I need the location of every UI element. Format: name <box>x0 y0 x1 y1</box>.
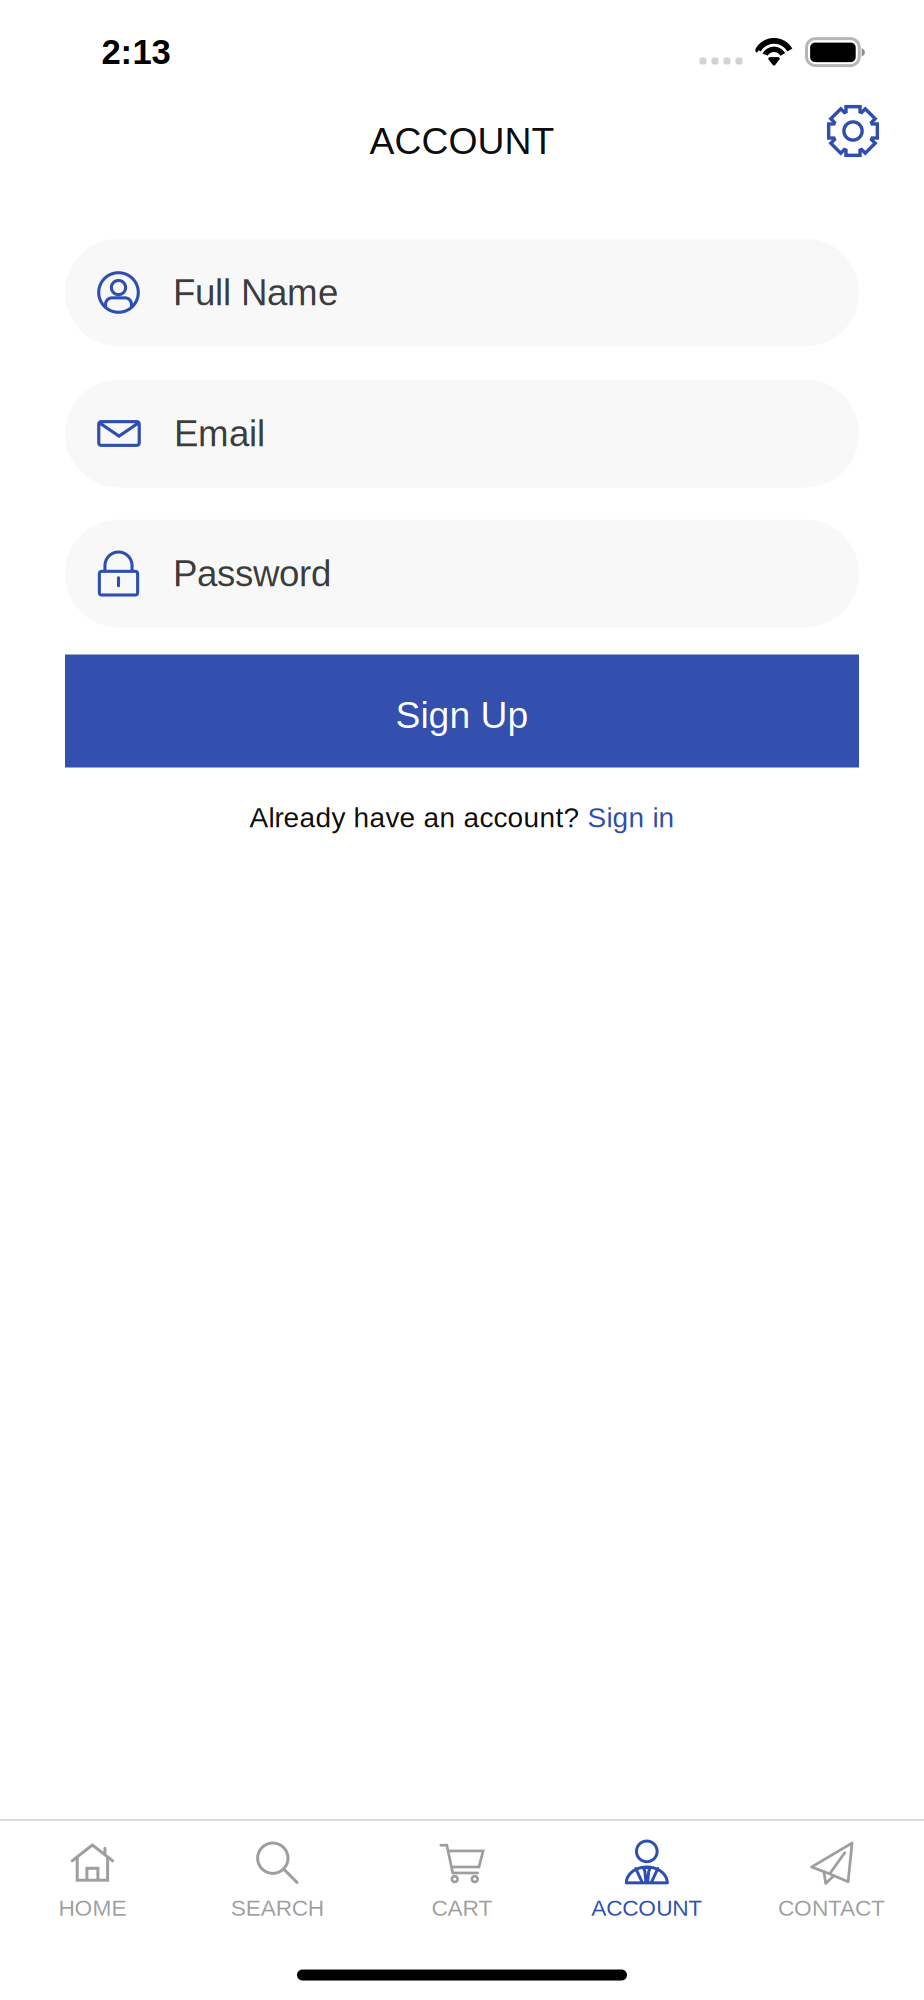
staticText: Already have an account? <box>249 802 587 833</box>
button[interactable]: Settings <box>815 93 891 169</box>
button[interactable]: HOME <box>0 1821 185 1949</box>
button[interactable]: Sign in <box>587 802 674 833</box>
button[interactable]: Sign Up <box>65 654 859 767</box>
staticText: Sign in <box>587 802 674 833</box>
button[interactable]: CONTACT <box>739 1821 924 1949</box>
staticText: CONTACT <box>778 1895 885 1921</box>
button[interactable]: Email <box>65 379 859 487</box>
staticText: HOME <box>58 1895 126 1921</box>
button[interactable]: SEARCH <box>185 1821 370 1949</box>
button[interactable]: Full Name <box>65 238 859 346</box>
staticText: ACCOUNT <box>369 120 554 162</box>
staticText: CART <box>431 1895 492 1921</box>
button[interactable]: Password <box>65 519 859 627</box>
staticText: Sign Up <box>395 694 528 736</box>
staticText: Email <box>174 413 265 454</box>
staticText: SEARCH <box>231 1895 324 1921</box>
button[interactable]: CART <box>370 1821 554 1949</box>
staticText: Full Name <box>173 272 338 313</box>
staticText: 2:13 <box>101 33 170 71</box>
button[interactable]: ACCOUNT <box>554 1821 739 1949</box>
staticText: ACCOUNT <box>591 1895 702 1921</box>
staticText: Password <box>173 553 331 594</box>
